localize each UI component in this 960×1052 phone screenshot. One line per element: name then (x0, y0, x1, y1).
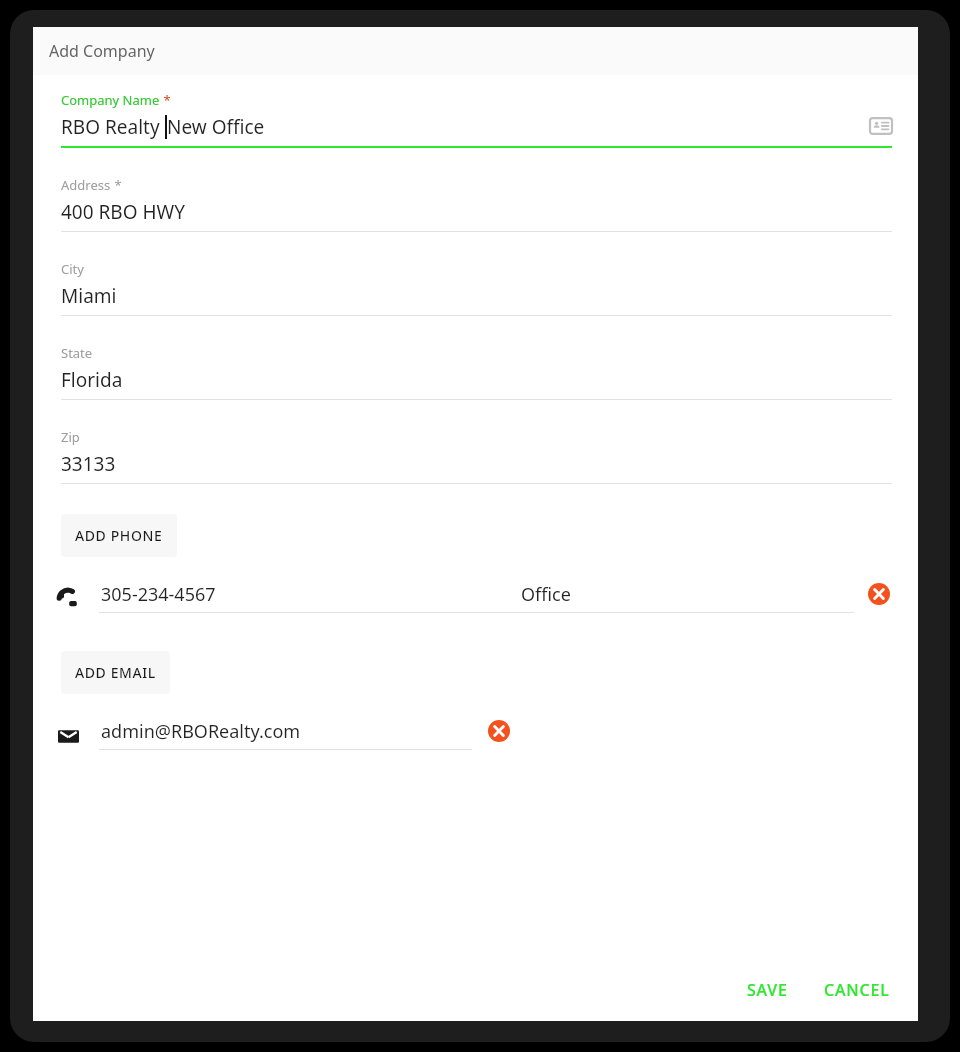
button[interactable]: Zip (61, 428, 892, 484)
staticText: State (61, 344, 93, 362)
button[interactable]: Remove (866, 581, 892, 607)
button[interactable]: CANCEL (814, 971, 900, 1009)
staticText: City (61, 260, 84, 278)
other: Phone (56, 587, 80, 611)
button[interactable]: ADD EMAIL (61, 651, 170, 694)
staticText: 400 RBO HWY (61, 199, 185, 225)
button[interactable]: Office (521, 582, 571, 607)
staticText: * (160, 91, 171, 109)
staticText: ADD EMAIL (75, 663, 156, 682)
staticText: * (111, 176, 122, 194)
button[interactable]: Company Name (61, 91, 892, 148)
button[interactable]: admin@RBORealty.com (101, 719, 301, 744)
staticText: CANCEL (824, 979, 890, 1001)
staticText: 33133 (61, 451, 116, 477)
staticText: New Office (167, 114, 265, 140)
staticText: Add Company (49, 40, 155, 62)
button[interactable]: Address (61, 176, 892, 232)
button[interactable]: 305-234-4567 (101, 582, 216, 607)
staticText: Florida (61, 367, 123, 393)
staticText: SAVE (747, 979, 788, 1001)
staticText: Address (61, 176, 111, 194)
button[interactable]: City (61, 260, 892, 316)
button[interactable]: State (61, 344, 892, 400)
staticText: Miami (61, 283, 117, 309)
button[interactable]: Choose from contacts (868, 113, 894, 139)
staticText: RBO Realty (61, 114, 165, 140)
button[interactable]: Remove (486, 718, 512, 744)
other: Email (56, 724, 80, 748)
staticText: Zip (61, 428, 80, 446)
button[interactable]: SAVE (737, 971, 798, 1009)
staticText: Company Name (61, 91, 160, 109)
button[interactable]: ADD PHONE (61, 514, 177, 557)
staticText: ADD PHONE (75, 526, 163, 545)
